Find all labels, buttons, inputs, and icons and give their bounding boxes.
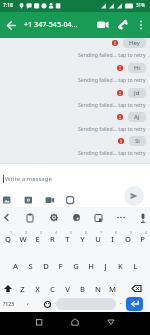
button[interactable] — [126, 297, 143, 311]
staticText: J — [104, 261, 107, 271]
button[interactable]: V — [60, 283, 75, 295]
staticText: T — [65, 234, 70, 244]
button[interactable]: Jd — [128, 88, 146, 98]
staticText: Jd — [134, 89, 140, 97]
staticText: O — [125, 234, 131, 244]
button[interactable]: X — [30, 283, 45, 295]
button[interactable]: Si — [129, 136, 146, 146]
button[interactable]: Hi — [128, 63, 146, 73]
button[interactable]: M — [105, 283, 120, 295]
staticText: 5 — [70, 230, 73, 235]
staticText: 8 — [115, 230, 118, 235]
staticText: Z — [20, 284, 25, 294]
button[interactable]: R — [45, 233, 60, 245]
staticText: W — [19, 234, 27, 244]
button[interactable]: D — [38, 260, 53, 272]
button[interactable]: I — [105, 233, 120, 245]
staticText: H — [88, 261, 94, 271]
staticText: Si — [135, 137, 140, 145]
staticText: M — [109, 284, 116, 294]
staticText: N — [95, 284, 101, 294]
staticText: 4 — [55, 230, 58, 235]
button[interactable]: N — [90, 283, 105, 295]
staticText: 31% — [136, 2, 145, 8]
button[interactable]: Sending failed... tap to retry — [78, 101, 146, 108]
staticText: L — [133, 261, 138, 271]
button[interactable]: , — [27, 297, 29, 307]
staticText: 1 — [10, 230, 13, 235]
button[interactable]: F — [53, 260, 68, 272]
button[interactable]: W — [15, 233, 30, 245]
staticText: S — [28, 261, 33, 271]
button[interactable]: Sending failed... tap to retry — [78, 149, 146, 156]
button[interactable]: L — [128, 260, 143, 272]
button[interactable]: Hey — [123, 38, 146, 48]
button[interactable]: H — [83, 260, 98, 272]
staticText: R — [50, 234, 55, 244]
staticText: X — [35, 284, 40, 294]
button[interactable]: U — [90, 233, 105, 245]
button[interactable]: Write a message — [5, 175, 52, 183]
staticText: U — [95, 234, 101, 244]
button[interactable] — [104, 315, 118, 329]
button[interactable]: C — [45, 283, 60, 295]
button[interactable]: Q — [0, 233, 15, 245]
staticText: 7:18 — [3, 2, 13, 9]
staticText: A — [13, 261, 18, 271]
staticText: B — [80, 284, 85, 294]
button[interactable]: J — [98, 260, 113, 272]
button[interactable]: E — [30, 233, 45, 245]
staticText: C — [50, 284, 55, 294]
button[interactable]: Sending failed... tap to retry — [78, 125, 146, 132]
button[interactable]: . — [120, 297, 122, 307]
button[interactable] — [32, 315, 46, 329]
staticText: 9 — [130, 230, 133, 235]
button[interactable]: Aj — [128, 112, 146, 122]
staticText: Aj — [134, 113, 140, 121]
button[interactable]: +1 347-545-04... — [24, 19, 78, 29]
staticText: 0 — [145, 230, 148, 235]
button[interactable]: B — [75, 283, 90, 295]
staticText: I — [111, 234, 114, 244]
staticText: E — [35, 234, 40, 244]
button[interactable]: ?123 — [3, 300, 15, 307]
staticText: Y — [80, 234, 85, 244]
staticText: Hi — [134, 64, 140, 72]
staticText: 3 — [40, 230, 43, 235]
button[interactable]: G — [68, 260, 83, 272]
staticText: G — [73, 261, 79, 271]
button[interactable]: T — [60, 233, 75, 245]
staticText: V — [65, 284, 70, 294]
staticText: D — [43, 261, 49, 271]
button[interactable]: S — [23, 260, 38, 272]
button[interactable]: P — [135, 233, 150, 245]
button[interactable] — [4, 18, 19, 33]
staticText: 6 — [85, 230, 88, 235]
staticText: Hey — [129, 39, 140, 47]
button[interactable]: A — [8, 260, 23, 272]
button[interactable] — [68, 315, 82, 329]
staticText: 7 — [100, 230, 103, 235]
button[interactable]: Z — [15, 283, 30, 295]
button[interactable]: Sending failed... tap to retry — [78, 76, 146, 83]
button[interactable]: K — [113, 260, 128, 272]
button[interactable]: Y — [75, 233, 90, 245]
button[interactable]: Sending failed... tap to retry — [78, 51, 146, 58]
staticText: 2 — [25, 230, 28, 235]
button[interactable] — [124, 186, 144, 206]
staticText: Q — [5, 234, 11, 244]
button[interactable] — [56, 298, 116, 310]
staticText: F — [58, 261, 63, 271]
staticText: P — [140, 234, 145, 244]
staticText: K — [118, 261, 123, 271]
button[interactable]: O — [120, 233, 135, 245]
